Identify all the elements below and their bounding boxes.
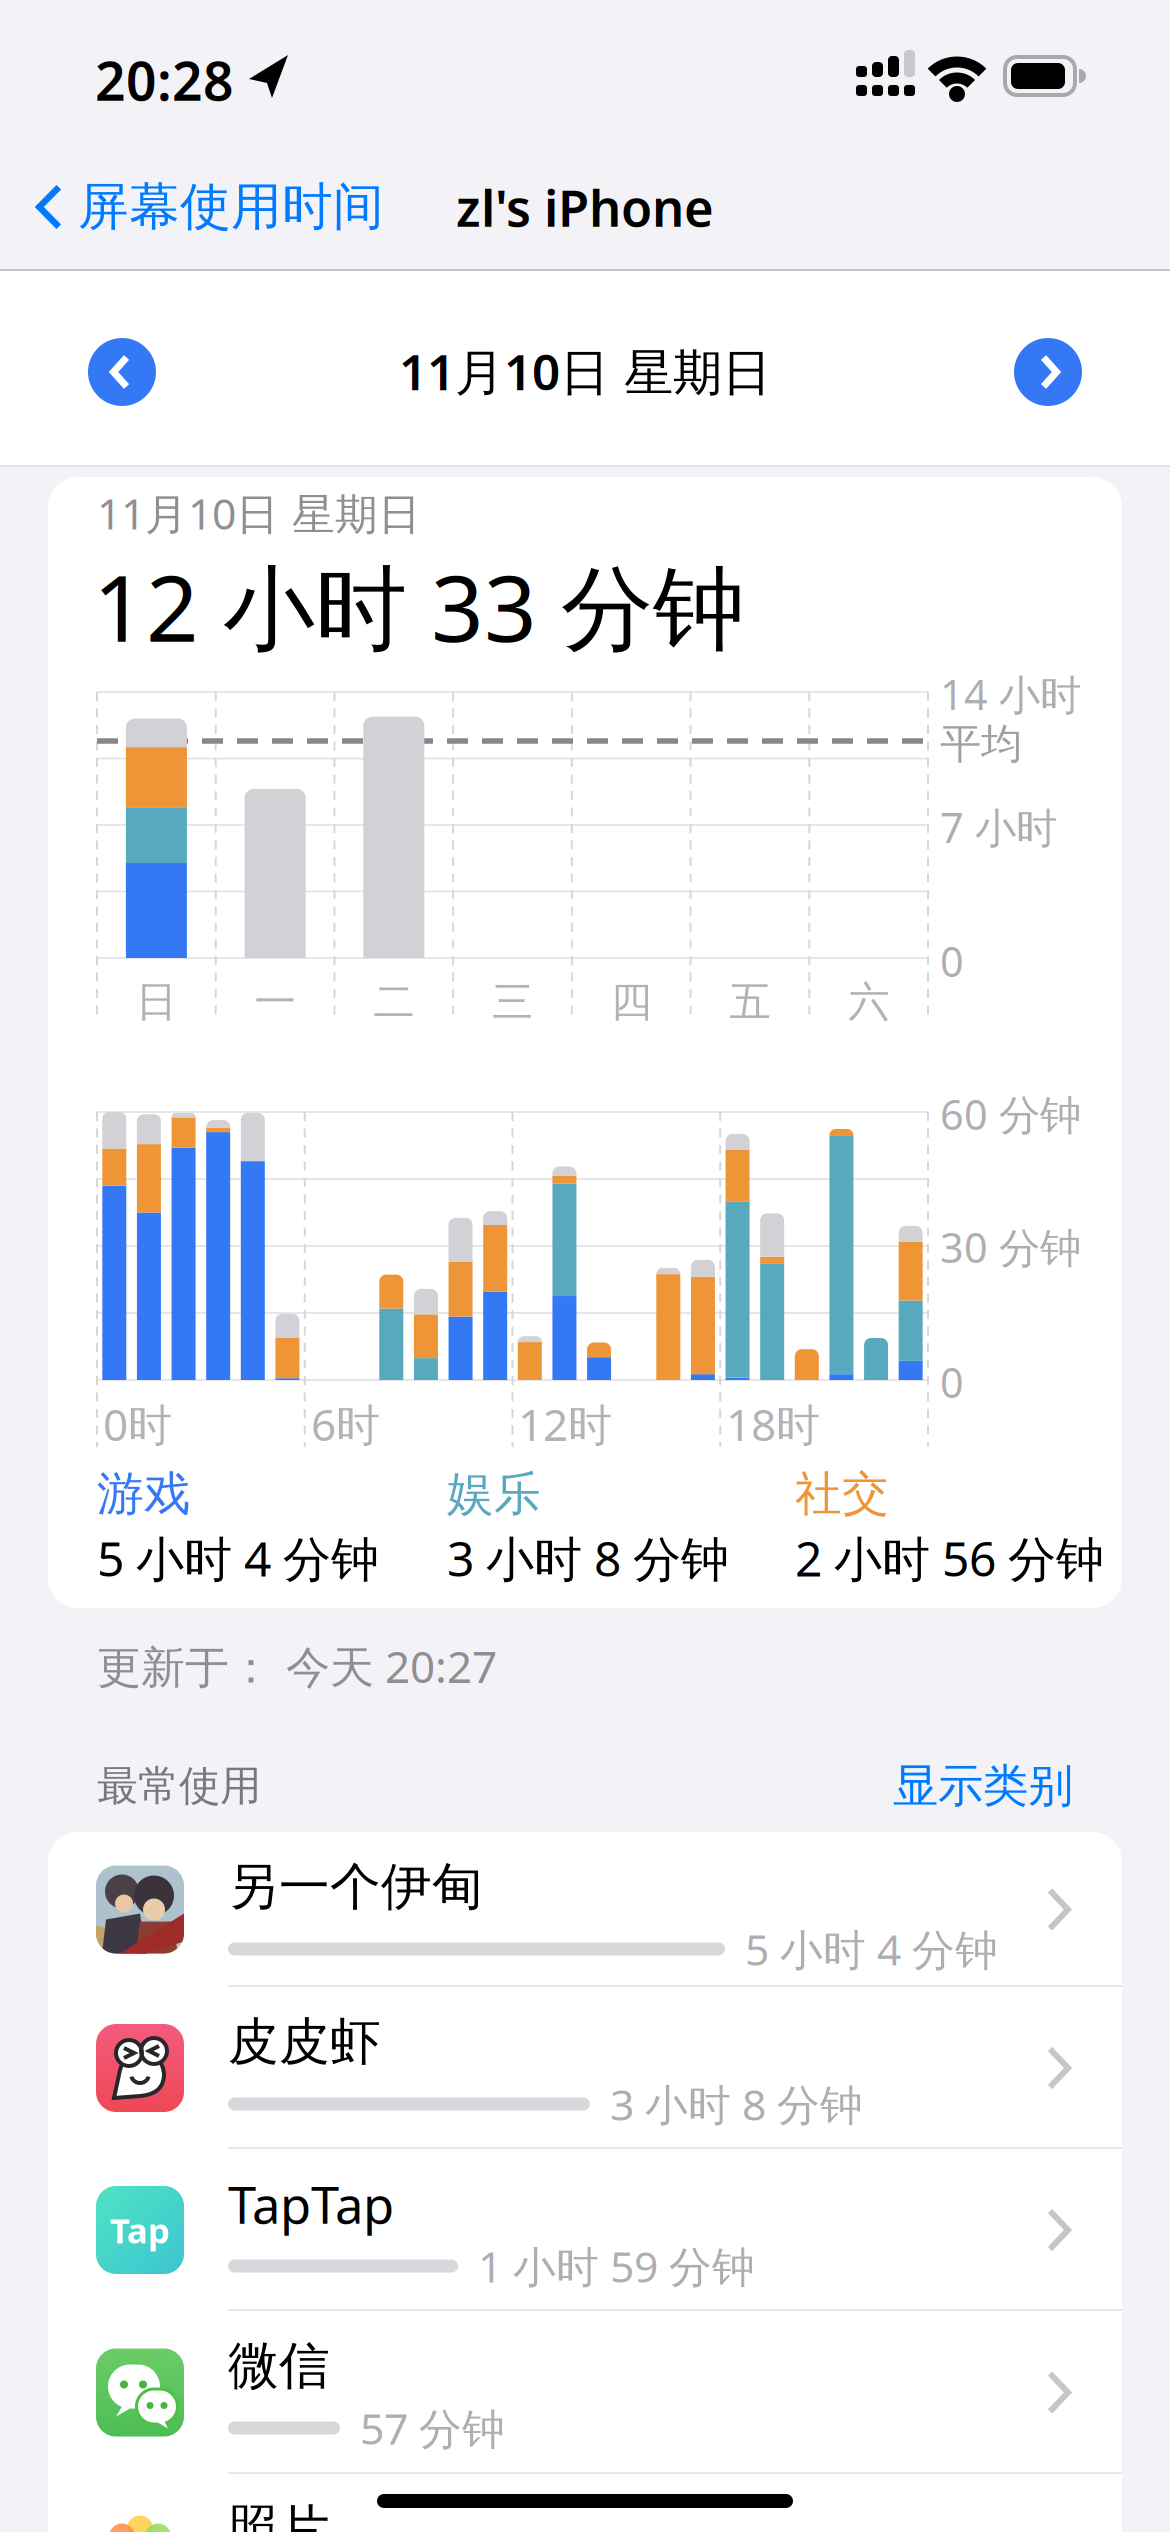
staticText: 皮皮虾 xyxy=(228,2011,381,2073)
staticText: 6时 xyxy=(311,1395,380,1453)
button[interactable]: Tap xyxy=(48,2149,1122,2311)
staticText: 照片 xyxy=(228,2498,330,2532)
button[interactable]: 另一个伊甸 xyxy=(48,1832,1122,1987)
staticText: 12 小时 33 分钟 xyxy=(93,545,745,667)
staticText: 3 小时 8 分钟 xyxy=(447,1526,729,1590)
staticText: 5 小时 4 分钟 xyxy=(745,1921,998,1977)
staticText: 11月10日 星期日 xyxy=(399,338,771,404)
staticText: 一 xyxy=(255,977,296,1027)
staticText: 微信 xyxy=(228,2335,330,2397)
staticText: 7 小时 xyxy=(940,800,1057,854)
staticText: 30 分钟 xyxy=(940,1220,1081,1274)
staticText: 显示类别 xyxy=(893,1758,1073,1814)
staticText: 57 分钟 xyxy=(360,2400,505,2456)
staticText: 0 xyxy=(940,934,964,988)
staticText: 最常使用 xyxy=(97,1761,261,1811)
staticText: 3 小时 8 分钟 xyxy=(610,2076,863,2132)
button[interactable]: 前一天 xyxy=(88,338,156,406)
button[interactable]: 返回 屏幕使用时间 xyxy=(36,162,636,252)
staticText: zl's iPhone xyxy=(456,173,714,241)
staticText: 三 xyxy=(492,977,533,1027)
staticText: 60 分钟 xyxy=(940,1087,1081,1141)
button[interactable]: 微信 xyxy=(48,2311,1122,2474)
staticText: 12时 xyxy=(518,1395,612,1453)
staticText: 1 小时 59 分钟 xyxy=(478,2238,755,2294)
staticText: 二 xyxy=(373,977,414,1027)
button[interactable]: 显示类别 xyxy=(773,1751,1073,1821)
staticText: 四 xyxy=(611,977,652,1027)
staticText: 20:28 xyxy=(95,45,234,115)
staticText: 14 小时 xyxy=(940,667,1081,721)
staticText: 11月10日 星期日 xyxy=(97,485,421,541)
staticText: TapTap xyxy=(228,2170,394,2238)
staticText: 2 小时 56 分钟 xyxy=(795,1526,1104,1590)
staticText: 游戏 xyxy=(97,1465,191,1523)
staticText: 0时 xyxy=(103,1395,172,1453)
staticText: 屏幕使用时间 xyxy=(78,176,384,238)
staticText: 18时 xyxy=(726,1395,820,1453)
staticText: 更新于： 今天 20:27 xyxy=(97,1637,497,1695)
button[interactable]: 照片 xyxy=(48,2474,1122,2532)
staticText: 0 xyxy=(940,1355,964,1409)
staticText: 娱乐 xyxy=(447,1465,541,1523)
staticText: 日 xyxy=(136,977,177,1027)
staticText: 平均 xyxy=(940,719,1022,769)
staticText: 5 小时 4 分钟 xyxy=(97,1526,379,1590)
button[interactable]: 后一天 xyxy=(1014,338,1082,406)
staticText: 五 xyxy=(729,977,770,1027)
staticText: Tap xyxy=(110,2207,170,2253)
staticText: 另一个伊甸 xyxy=(228,1856,483,1918)
staticText: 社交 xyxy=(795,1465,889,1523)
staticText: 六 xyxy=(848,977,889,1027)
button[interactable]: 皮皮虾 xyxy=(48,1987,1122,2149)
